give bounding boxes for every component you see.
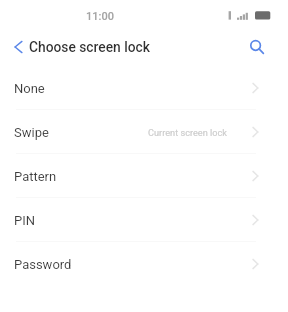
- button[interactable]: Password: [0, 242, 288, 286]
- staticText: None: [14, 81, 45, 96]
- button[interactable]: Back: [5, 33, 32, 60]
- button[interactable]: Search: [245, 34, 269, 58]
- button[interactable]: Swipe: [0, 110, 288, 154]
- staticText: Swipe: [14, 125, 49, 140]
- staticText: 11:00: [86, 10, 114, 23]
- staticText: Current screen lock: [148, 127, 228, 138]
- button[interactable]: None: [0, 66, 288, 110]
- staticText: Password: [14, 257, 72, 272]
- staticText: PIN: [14, 213, 36, 228]
- staticText: Pattern: [14, 169, 57, 184]
- button[interactable]: PIN: [0, 198, 288, 242]
- staticText: Choose screen lock: [29, 39, 150, 55]
- button[interactable]: Pattern: [0, 154, 288, 198]
